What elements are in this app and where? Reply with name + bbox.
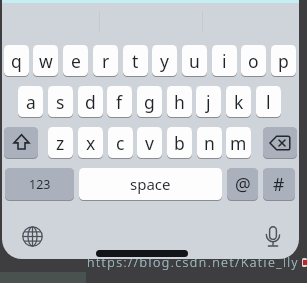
staticText: j	[206, 90, 211, 114]
button[interactable]: f	[107, 86, 132, 117]
staticText: o	[248, 49, 259, 73]
staticText: @	[235, 172, 251, 196]
button[interactable]: l	[256, 86, 281, 117]
button[interactable]: u	[182, 45, 207, 76]
staticText: t	[132, 49, 139, 73]
button[interactable]: m	[226, 127, 251, 158]
staticText: b	[174, 131, 185, 155]
staticText: i	[222, 49, 227, 73]
button[interactable]: @	[227, 168, 258, 200]
staticText: q	[11, 49, 22, 73]
staticText: c	[116, 131, 125, 155]
button[interactable]: g	[137, 86, 162, 117]
button[interactable]: p	[271, 45, 296, 76]
button[interactable]: o	[241, 45, 266, 76]
staticText: m	[230, 131, 247, 155]
button[interactable]	[263, 127, 297, 158]
staticText: n	[204, 131, 215, 155]
button[interactable]: v	[137, 127, 162, 158]
button[interactable]	[4, 127, 38, 158]
staticText: a	[26, 90, 36, 114]
button[interactable]: c	[108, 127, 133, 158]
staticText: g	[144, 90, 155, 114]
staticText: e	[71, 49, 81, 73]
staticText: d	[85, 90, 96, 114]
button[interactable]: t	[123, 45, 148, 76]
button[interactable]: space	[79, 168, 222, 200]
staticText: l	[266, 90, 271, 114]
staticText: s	[56, 90, 65, 114]
button[interactable]: r	[93, 45, 118, 76]
staticText: h	[174, 90, 185, 114]
button[interactable]: n	[197, 127, 222, 158]
staticText: 123	[29, 176, 51, 193]
staticText: https://blog.csdn.net/Katie_lly	[87, 254, 299, 271]
staticText: z	[56, 131, 65, 155]
staticText: y	[160, 49, 169, 73]
button[interactable]: 123	[5, 168, 74, 200]
button[interactable]	[259, 224, 287, 252]
button[interactable]: i	[212, 45, 237, 76]
staticText: p	[278, 49, 289, 73]
button[interactable]: y	[152, 45, 177, 76]
button[interactable]: k	[226, 86, 251, 117]
staticText: #	[273, 172, 285, 196]
button[interactable]: x	[78, 127, 103, 158]
button[interactable]: #	[263, 168, 295, 200]
button[interactable]: s	[48, 86, 73, 117]
staticText: w	[39, 49, 53, 73]
button[interactable]: d	[78, 86, 103, 117]
button[interactable]	[18, 222, 46, 250]
staticText: k	[234, 90, 244, 114]
staticText: f	[116, 90, 123, 114]
staticText: space	[130, 174, 171, 194]
staticText: r	[102, 49, 110, 73]
button[interactable]: w	[33, 45, 58, 76]
button[interactable]: j	[196, 86, 221, 117]
staticText: u	[189, 49, 200, 73]
button[interactable]: e	[63, 45, 88, 76]
staticText: v	[145, 131, 154, 155]
button[interactable]: a	[18, 86, 43, 117]
button[interactable]: z	[48, 127, 73, 158]
staticText: x	[86, 131, 96, 155]
button[interactable]: h	[167, 86, 192, 117]
button[interactable]: b	[167, 127, 192, 158]
button[interactable]: q	[4, 45, 29, 76]
